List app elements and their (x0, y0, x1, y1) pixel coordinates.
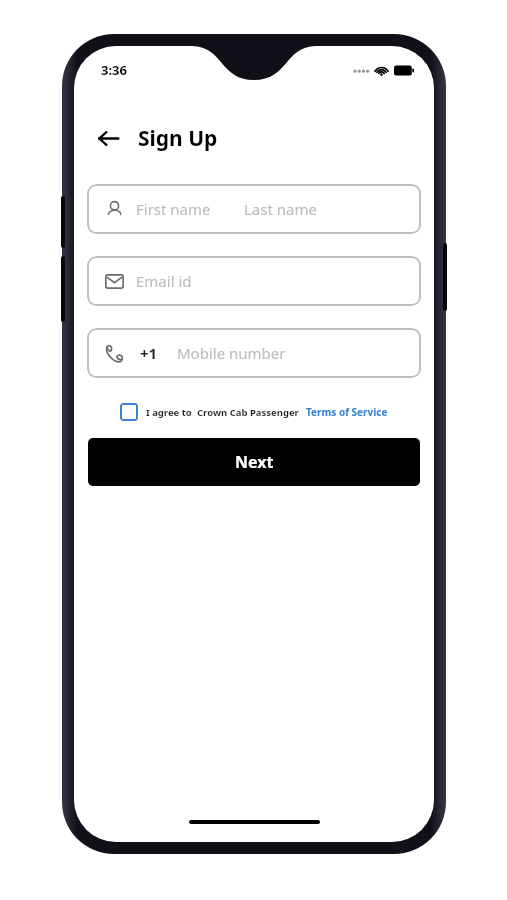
button[interactable]: Back (90, 120, 126, 156)
button[interactable]: Terms of Service (306, 405, 388, 419)
staticText: Last name (244, 199, 317, 219)
staticText: Crown Cab Passenger (197, 406, 299, 419)
staticText: I agree to (146, 406, 192, 419)
staticText: First name (136, 199, 211, 219)
button[interactable]: First name (87, 184, 421, 234)
staticText: Next (235, 451, 274, 473)
staticText: +1 (140, 343, 158, 363)
button[interactable]: I agree to terms checkbox (120, 403, 138, 421)
staticText: Sign Up (138, 124, 218, 153)
staticText: Mobile number (177, 343, 286, 363)
button[interactable]: +1 (87, 328, 421, 378)
staticText: Terms of Service (306, 405, 388, 419)
staticText: 3:36 (101, 61, 127, 79)
staticText: Email id (136, 271, 192, 291)
button[interactable]: Next (88, 438, 420, 486)
button[interactable]: Email id (87, 256, 421, 306)
